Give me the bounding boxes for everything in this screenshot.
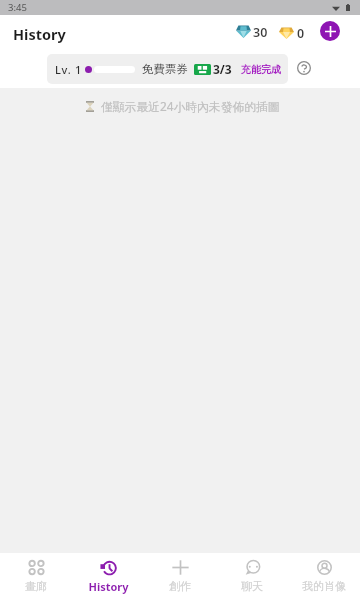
staticText: History [13, 24, 66, 44]
staticText: History [88, 579, 129, 594]
button[interactable]: 我的肖像 [288, 553, 360, 600]
button[interactable]: Add [320, 21, 340, 41]
staticText: 30 [253, 24, 268, 39]
button[interactable]: 0 [279, 25, 305, 40]
staticText: 畫廊 [25, 579, 47, 593]
staticText: 創作 [169, 579, 191, 593]
staticText: 3:45 [8, 1, 27, 14]
staticText: 我的肖像 [302, 579, 346, 593]
staticText: Lv. 1 [55, 62, 82, 77]
staticText: 0 [297, 25, 305, 40]
button[interactable]: 創作 [144, 553, 216, 600]
button[interactable]: 聊天 [216, 553, 288, 600]
staticText: 聊天 [241, 579, 263, 593]
button[interactable]: Lv. 1 [47, 54, 288, 84]
button[interactable]: History [72, 553, 144, 600]
staticText: 充能完成 [241, 63, 281, 76]
button[interactable]: Help [297, 61, 311, 75]
staticText: 3/3 [213, 61, 232, 77]
staticText: 免費票券 [142, 62, 188, 76]
button[interactable]: 30 [236, 24, 268, 39]
button[interactable]: 畫廊 [0, 553, 72, 600]
staticText: 僅顯示最近24小時內未發佈的插圖 [101, 98, 280, 114]
